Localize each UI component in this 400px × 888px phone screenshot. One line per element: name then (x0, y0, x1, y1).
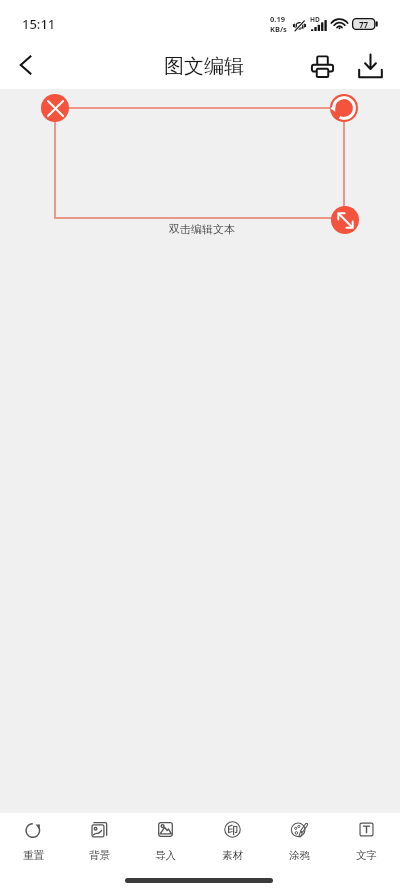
staticText: 文字 (356, 849, 377, 862)
staticText: 重置 (23, 849, 44, 862)
button[interactable]: Delete (41, 94, 69, 122)
staticText: 导入 (155, 849, 176, 862)
button[interactable]: 重置 (0, 813, 66, 864)
button[interactable]: 涂鸦 (266, 813, 333, 864)
button[interactable]: Rotate (330, 94, 358, 122)
button[interactable]: Download (348, 44, 392, 88)
staticText: 0.19 (270, 14, 285, 24)
staticText: 77 (359, 19, 369, 30)
button[interactable]: Resize (331, 206, 359, 234)
button[interactable]: 印 (199, 813, 266, 864)
staticText: 双击编辑文本 (169, 222, 235, 236)
staticText: 印 (227, 823, 238, 837)
button[interactable]: 背景 (66, 813, 132, 864)
staticText: 背景 (89, 849, 110, 862)
staticText: 图文编辑 (164, 54, 244, 79)
staticText: 15:11 (22, 15, 56, 33)
button[interactable]: Back (2, 42, 50, 87)
staticText: HD (310, 15, 320, 24)
staticText: KB/s (270, 24, 287, 34)
staticText: 素材 (222, 849, 243, 862)
button[interactable]: 文字 (333, 813, 400, 864)
button[interactable]: 导入 (132, 813, 199, 864)
staticText: 涂鸦 (289, 849, 310, 862)
button[interactable]: Print (300, 44, 344, 88)
